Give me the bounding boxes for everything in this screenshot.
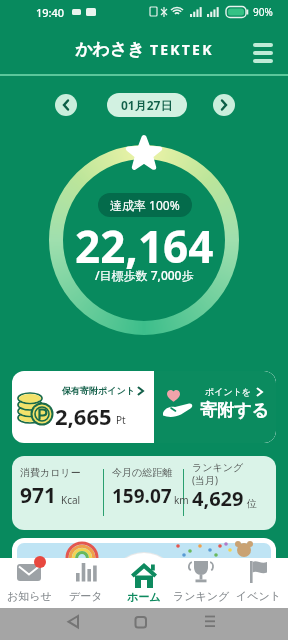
staticText: 寄附する [200, 400, 269, 421]
button[interactable] [213, 94, 235, 116]
staticText: TEKTEK [150, 40, 214, 59]
staticText: 90% [253, 5, 273, 19]
staticText: /目標歩数 7,000歩 [95, 267, 194, 283]
staticText: 01月27日 [121, 97, 173, 113]
button[interactable]: データ [58, 558, 114, 608]
button[interactable]: ホーム [116, 556, 172, 608]
staticText: ランキング [173, 589, 230, 603]
staticText: km [174, 493, 189, 507]
button[interactable] [12, 538, 276, 582]
button[interactable]: ポイントを [154, 371, 276, 443]
button[interactable]: イベント [231, 558, 287, 608]
staticText: かわさき [75, 39, 145, 60]
button[interactable] [55, 94, 77, 116]
button[interactable]: お知らせ [1, 558, 57, 608]
staticText: お知らせ [7, 589, 52, 603]
staticText: 達成率 100% [110, 197, 180, 213]
staticText: 19:40 [36, 5, 65, 20]
staticText: 4,629 [192, 485, 244, 512]
staticText: データ [69, 589, 103, 603]
staticText: ポイントを [205, 386, 252, 397]
staticText: 22,164 [75, 216, 214, 276]
staticText: 971 [20, 481, 57, 510]
staticText: 今月の総距離 [112, 466, 173, 479]
staticText: Pt [116, 413, 126, 427]
button[interactable]: 01月27日 [107, 93, 187, 117]
staticText: 保有寄附ポイント [62, 385, 135, 396]
staticText: ランキング [192, 461, 244, 474]
button[interactable] [249, 41, 277, 65]
staticText: 2,665 [55, 401, 112, 431]
staticText: (当月) [192, 473, 218, 487]
button[interactable]: ランキング [171, 558, 231, 608]
staticText: Kcal [61, 493, 81, 507]
staticText: 159.07 [112, 483, 172, 509]
staticText: ホーム [127, 590, 161, 604]
button[interactable]: 保有寄附ポイント [12, 371, 152, 443]
staticText: 消費カロリー [20, 466, 81, 479]
button[interactable]: 消費カロリー [12, 456, 276, 530]
staticText: 位 [247, 497, 257, 510]
staticText: イベント [236, 589, 282, 603]
